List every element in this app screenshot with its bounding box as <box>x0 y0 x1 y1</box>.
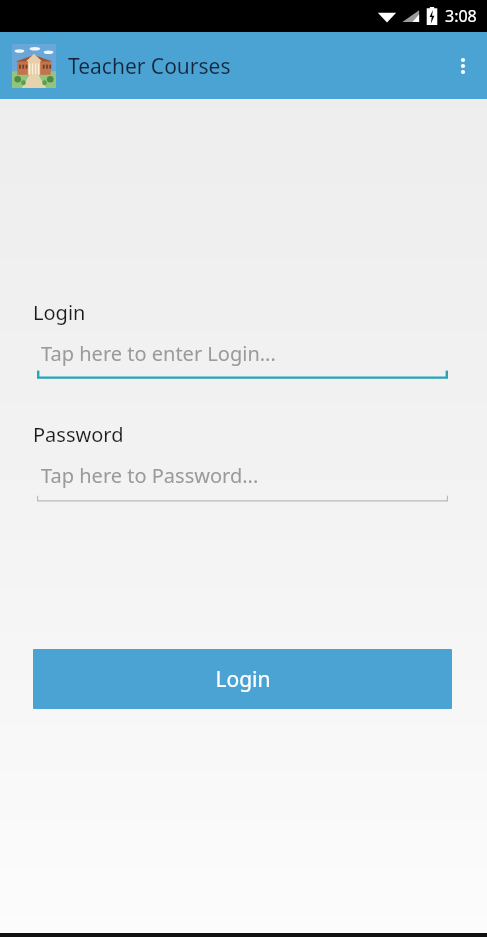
staticText: Teacher Courses <box>68 52 231 81</box>
other: App icon <box>12 44 56 88</box>
button[interactable]: More options <box>439 42 487 90</box>
staticText: Tap here to Password... <box>41 462 259 489</box>
staticText: Tap here to enter Login... <box>41 340 276 367</box>
button[interactable]: Login input field <box>37 340 448 380</box>
button[interactable]: Login <box>33 649 452 709</box>
staticText: 3:08 <box>445 5 477 27</box>
staticText: Password <box>33 421 124 448</box>
button[interactable]: Password input field <box>37 462 448 502</box>
staticText: Login <box>33 299 86 326</box>
staticText: Login <box>215 665 271 694</box>
